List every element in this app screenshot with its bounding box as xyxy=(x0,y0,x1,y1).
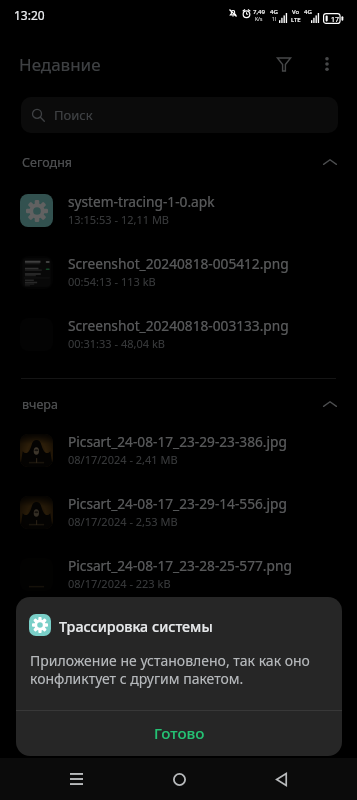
button[interactable]: Back xyxy=(257,758,305,800)
staticText: 17 xyxy=(331,15,340,25)
staticText: Недавние xyxy=(19,53,101,76)
staticText: Vo xyxy=(292,8,300,16)
button[interactable]: Screenshot_20240818-005412.png xyxy=(0,241,357,303)
button[interactable]: Screenshot_20240818-003133.png xyxy=(0,303,357,365)
staticText: Picsart_24-08-17_23-29-14-556.jpg xyxy=(68,494,338,513)
staticText: Трассировка системы xyxy=(59,617,213,636)
staticText: Screenshot_20240818-003133.png xyxy=(68,316,338,335)
button[interactable]: Сегодня xyxy=(0,148,357,176)
staticText: 00:54:13 - 113 kB xyxy=(68,274,156,289)
button[interactable]: Готово xyxy=(16,711,342,756)
staticText: system-tracing-1-0.apk xyxy=(68,192,338,211)
button[interactable]: Filter xyxy=(262,42,306,86)
button[interactable]: system-tracing-1-0.apk xyxy=(0,179,357,241)
button[interactable]: Picsart_24-08-17_23-29-14-556.jpg xyxy=(0,481,357,543)
staticText: 7,49 xyxy=(253,8,265,16)
button[interactable]: Home xyxy=(155,758,203,800)
staticText: Picsart_24-08-17_23-29-23-386.jpg xyxy=(68,432,338,451)
staticText: 08/17/2024 - 2,41 MB xyxy=(68,452,178,467)
staticText: Screenshot_20240818-005412.png xyxy=(68,254,338,273)
staticText: 13:20 xyxy=(14,7,45,23)
staticText: 08/17/2024 - 223 kB xyxy=(68,576,171,591)
staticText: 13:15:53 - 12,11 MB xyxy=(68,212,170,227)
button[interactable]: Picsart_24-08-17_23-28-25-577.png xyxy=(0,543,357,605)
button[interactable]: Picsart_24-08-17_23-29-23-386.jpg xyxy=(0,419,357,481)
button[interactable]: Поиск xyxy=(21,97,338,133)
staticText: Приложение не установлено, так как оно к… xyxy=(30,651,330,688)
staticText: LTE xyxy=(291,16,301,24)
staticText: Picsart_24-08-17_23-28-25-577.png xyxy=(68,556,338,575)
staticText: 4G xyxy=(304,8,312,16)
staticText: Сегодня xyxy=(22,154,73,171)
staticText: вчера xyxy=(22,396,58,413)
staticText: Готово xyxy=(154,723,205,744)
staticText: 4G xyxy=(270,8,278,16)
staticText: 1l xyxy=(272,16,277,23)
button[interactable]: Recents xyxy=(52,758,100,800)
staticText: Поиск xyxy=(54,106,93,124)
staticText: 00:31:33 - 48,04 kB xyxy=(68,336,165,351)
staticText: K/s xyxy=(255,16,263,23)
staticText: 08/17/2024 - 2,53 MB xyxy=(68,514,178,529)
button[interactable]: вчера xyxy=(0,390,357,418)
button[interactable]: More options xyxy=(305,42,349,86)
